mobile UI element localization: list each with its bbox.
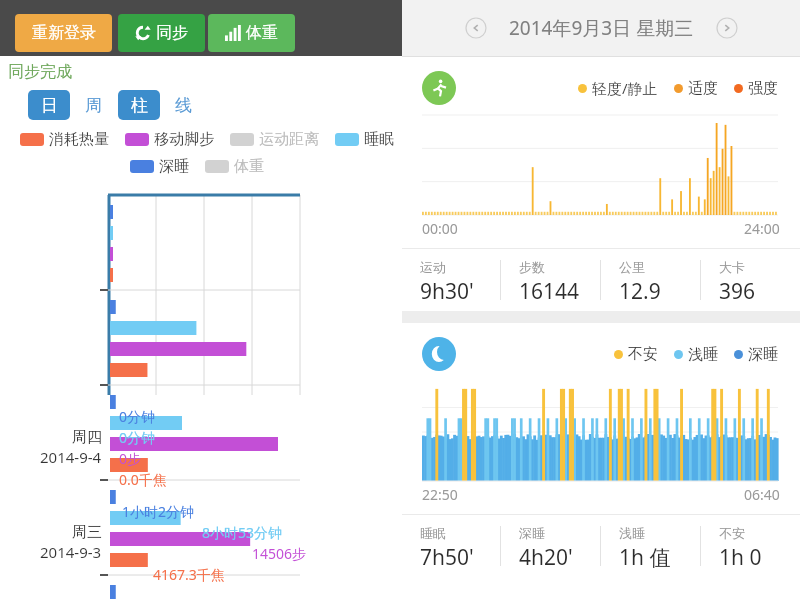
staticText: 大卡: [719, 259, 745, 275]
button[interactable]: 线: [172, 90, 194, 120]
staticText: 4h20': [519, 543, 573, 572]
button[interactable]: 周: [82, 90, 104, 120]
staticText: 0.0千焦: [119, 470, 167, 489]
staticText: 柱: [131, 95, 148, 116]
button[interactable]: 消耗热量: [20, 130, 109, 149]
staticText: 周: [85, 95, 102, 116]
staticText: 周四: [72, 428, 102, 447]
staticText: 1h 0: [719, 543, 762, 572]
staticText: 同步完成: [8, 62, 72, 82]
staticText: 线: [175, 95, 192, 116]
button[interactable]: 体重: [205, 157, 264, 176]
staticText: 不安: [628, 345, 658, 364]
button[interactable]: 浅睡: [601, 515, 700, 577]
button[interactable]: 柱: [118, 90, 160, 120]
button[interactable]: 不安: [701, 515, 800, 577]
staticText: 12.9: [619, 277, 661, 306]
button[interactable]: 深睡: [130, 157, 189, 176]
staticText: 深睡: [159, 157, 189, 176]
button[interactable]: 移动脚步: [125, 130, 214, 149]
staticText: 2014-9-3: [40, 542, 102, 562]
button[interactable]: Sleep: [422, 337, 456, 371]
button[interactable]: 同步: [118, 14, 205, 52]
button[interactable]: 体重: [208, 14, 295, 52]
staticText: 移动脚步: [154, 130, 214, 149]
staticText: 14506步: [252, 544, 307, 563]
staticText: 同步: [156, 23, 188, 43]
button[interactable]: 步数: [501, 249, 600, 311]
button[interactable]: Activity: [422, 71, 456, 105]
staticText: 适度: [688, 79, 718, 98]
staticText: 22:50: [422, 485, 458, 504]
button[interactable]: 运动: [402, 249, 500, 311]
button[interactable]: 睡眠: [402, 515, 500, 577]
staticText: 不安: [719, 525, 745, 541]
button[interactable]: 运动距离: [230, 130, 319, 149]
staticText: 396: [719, 277, 756, 306]
button[interactable]: 公里: [601, 249, 700, 311]
staticText: 浅睡: [688, 345, 718, 364]
staticText: 轻度/静止: [592, 78, 658, 98]
staticText: 运动距离: [259, 130, 319, 149]
staticText: 强度: [748, 79, 778, 98]
staticText: 日: [41, 95, 58, 116]
button[interactable]: 深睡: [501, 515, 600, 577]
staticText: 24:00: [744, 219, 780, 238]
staticText: 体重: [234, 157, 264, 176]
staticText: 06:40: [744, 485, 780, 504]
staticText: 2014年9月3日 星期三: [509, 15, 694, 41]
staticText: 4167.3千焦: [153, 565, 225, 584]
staticText: 0步: [119, 449, 142, 468]
staticText: 浅睡: [619, 525, 645, 541]
staticText: 00:00: [422, 219, 458, 238]
staticText: 睡眠: [364, 130, 394, 149]
staticText: 1小时2分钟: [122, 502, 195, 521]
staticText: 7h50': [420, 543, 474, 572]
button[interactable]: Next day: [716, 17, 738, 39]
button[interactable]: 大卡: [701, 249, 800, 311]
staticText: 消耗热量: [49, 130, 109, 149]
button[interactable]: 日: [28, 90, 70, 120]
staticText: 2014-9-4: [40, 447, 102, 467]
button[interactable]: Previous day: [465, 17, 487, 39]
staticText: 0分钟: [119, 428, 156, 447]
staticText: 16144: [519, 277, 580, 306]
staticText: 8小时53分钟: [202, 523, 283, 542]
staticText: 9h30': [420, 277, 474, 306]
staticText: 运动: [420, 259, 446, 275]
staticText: 公里: [619, 259, 645, 275]
staticText: 1h 值: [619, 543, 671, 572]
staticText: 睡眠: [420, 525, 446, 541]
button[interactable]: 睡眠: [335, 130, 394, 149]
button[interactable]: 重新登录: [15, 14, 112, 52]
staticText: 步数: [519, 259, 545, 275]
staticText: 体重: [246, 23, 278, 43]
staticText: 重新登录: [32, 23, 96, 43]
staticText: 深睡: [748, 345, 778, 364]
staticText: 深睡: [519, 525, 545, 541]
staticText: 0分钟: [119, 407, 156, 426]
staticText: 周三: [72, 523, 102, 542]
